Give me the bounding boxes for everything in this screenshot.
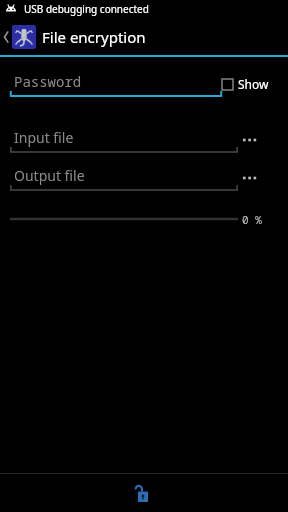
staticText: 0 %	[242, 212, 262, 227]
button[interactable]: Choose input file	[238, 127, 262, 153]
button[interactable]: Output file	[10, 163, 238, 193]
button[interactable]: Input file	[10, 125, 238, 155]
staticText: Password	[14, 72, 82, 91]
staticText: File encryption	[42, 27, 146, 47]
staticText: Input file	[14, 128, 74, 147]
staticText: Show	[238, 76, 269, 92]
button[interactable]: Navigate up	[0, 25, 148, 49]
staticText: Output file	[14, 166, 85, 185]
button[interactable]: Choose output file	[238, 165, 262, 191]
button[interactable]: Show	[222, 76, 269, 92]
button[interactable]: Password	[10, 69, 222, 99]
button[interactable]: Decrypt	[96, 474, 192, 512]
staticText: USB debugging connected	[24, 2, 149, 16]
